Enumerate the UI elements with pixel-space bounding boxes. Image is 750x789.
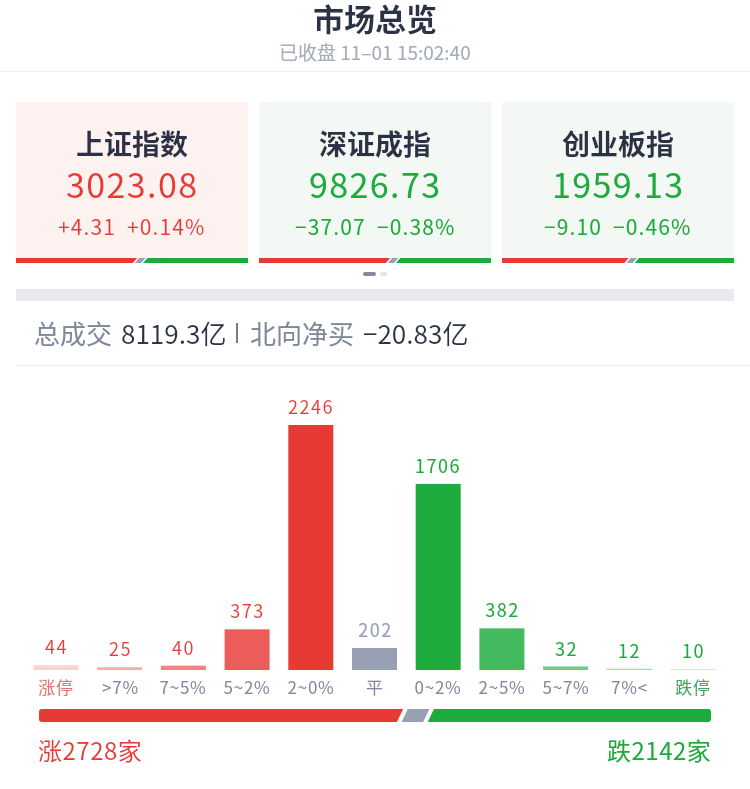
staticText: 44 [45, 633, 68, 659]
staticText: 1706 [415, 452, 461, 478]
staticText: −20.83亿 [363, 314, 469, 352]
staticText: 2~0% [287, 674, 335, 699]
staticText: 1959.13 [552, 159, 685, 208]
button[interactable]: 创业板指 [502, 102, 734, 263]
staticText: 创业板指 [562, 123, 675, 164]
staticText: 2246 [288, 393, 334, 419]
staticText: 10 [682, 637, 705, 663]
staticText: 北向净买 [250, 314, 355, 352]
staticText: 7%< [611, 674, 648, 699]
staticText: 深证成指 [319, 123, 432, 164]
staticText: 跌2142家 [607, 732, 712, 767]
button[interactable]: 总成交 [34, 301, 750, 365]
staticText: 2~5% [478, 674, 526, 699]
staticText: 373 [230, 597, 265, 623]
staticText: 已收盘 11–01 15:02:40 [279, 38, 471, 66]
staticText: 7~5% [159, 674, 207, 699]
staticText: 0~2% [414, 674, 462, 699]
staticText: 202 [358, 616, 393, 642]
staticText: 涨停 [38, 674, 74, 699]
staticText: −0.46% [613, 211, 692, 241]
staticText: 5~7% [542, 674, 590, 699]
staticText: 跌停 [675, 674, 711, 699]
staticText: 9826.73 [309, 159, 442, 208]
staticText: 382 [485, 596, 520, 622]
staticText: 12 [618, 637, 641, 663]
staticText: 40 [172, 634, 195, 660]
staticText: +0.14% [127, 211, 206, 241]
staticText: >7% [102, 674, 139, 699]
staticText: 市场总览 [313, 0, 437, 40]
staticText: 总成交 [34, 314, 113, 352]
staticText: 3023.08 [66, 159, 199, 208]
staticText: +4.31 [58, 211, 116, 241]
staticText: 平 [366, 674, 384, 699]
staticText: 5~2% [223, 674, 271, 699]
staticText: −37.07 [295, 211, 366, 241]
staticText: 25 [109, 635, 132, 661]
staticText: 8119.3亿 [121, 314, 227, 352]
staticText: −0.38% [377, 211, 456, 241]
staticText: 32 [555, 635, 578, 661]
staticText: 上证指数 [76, 123, 189, 164]
staticText: −9.10 [544, 211, 602, 241]
button[interactable]: 深证成指 [259, 102, 491, 263]
button[interactable]: 上证指数 [16, 102, 248, 263]
staticText: 涨2728家 [38, 732, 143, 767]
